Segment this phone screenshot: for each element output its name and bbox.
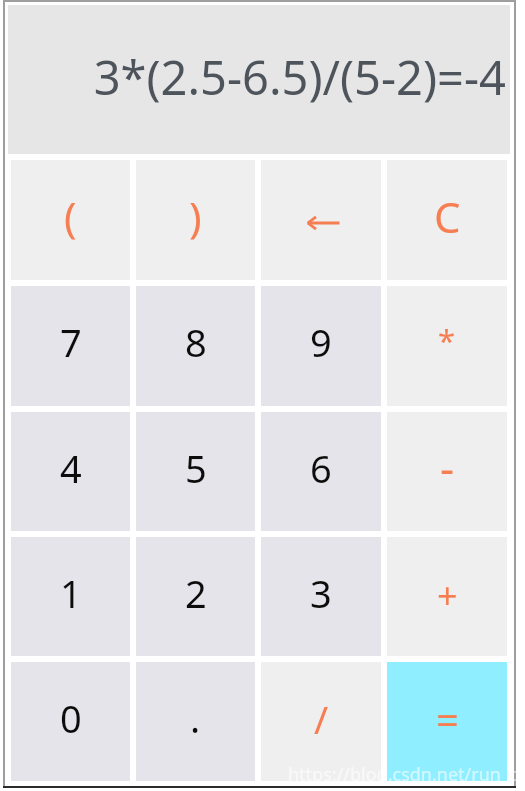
- button[interactable]: 8: [136, 286, 255, 406]
- button[interactable]: +: [387, 537, 507, 656]
- staticText: C: [434, 188, 461, 245]
- button[interactable]: Backspace: [261, 160, 381, 280]
- staticText: 8: [185, 316, 207, 368]
- staticText: 5: [185, 442, 207, 494]
- button[interactable]: *: [387, 286, 507, 406]
- staticText: +: [437, 571, 458, 620]
- staticText: 1: [60, 567, 82, 619]
- button[interactable]: 0: [11, 662, 130, 781]
- button[interactable]: 1: [11, 537, 130, 656]
- button[interactable]: ): [136, 160, 255, 280]
- button[interactable]: C: [387, 160, 507, 280]
- button[interactable]: 5: [136, 412, 255, 531]
- staticText: 0: [60, 692, 82, 744]
- button[interactable]: /: [261, 662, 381, 781]
- staticText: /: [314, 693, 329, 745]
- button[interactable]: 2: [136, 537, 255, 656]
- staticText: =: [436, 692, 459, 746]
- button[interactable]: 9: [261, 286, 381, 406]
- staticText: 6: [310, 442, 332, 494]
- staticText: 3*(2.5-6.5)/(5-2)=-4: [93, 45, 506, 109]
- staticText: .: [190, 692, 201, 744]
- button[interactable]: 6: [261, 412, 381, 531]
- button[interactable]: 7: [11, 286, 130, 406]
- staticText: https://blog.csdn.net/run_bear: [288, 762, 525, 787]
- staticText: 7: [60, 316, 82, 368]
- button[interactable]: (: [11, 160, 130, 280]
- button[interactable]: 3: [261, 537, 381, 656]
- staticText: ): [189, 188, 202, 245]
- button[interactable]: .: [136, 662, 255, 781]
- staticText: 4: [60, 442, 82, 494]
- staticText: -: [440, 437, 455, 497]
- button[interactable]: 4: [11, 412, 130, 531]
- button[interactable]: =: [387, 662, 507, 781]
- staticText: *: [438, 319, 456, 361]
- staticText: 3: [310, 567, 332, 619]
- button[interactable]: -: [387, 412, 507, 531]
- staticText: 2: [185, 567, 207, 619]
- staticText: (: [64, 188, 77, 245]
- staticText: 9: [310, 316, 332, 368]
